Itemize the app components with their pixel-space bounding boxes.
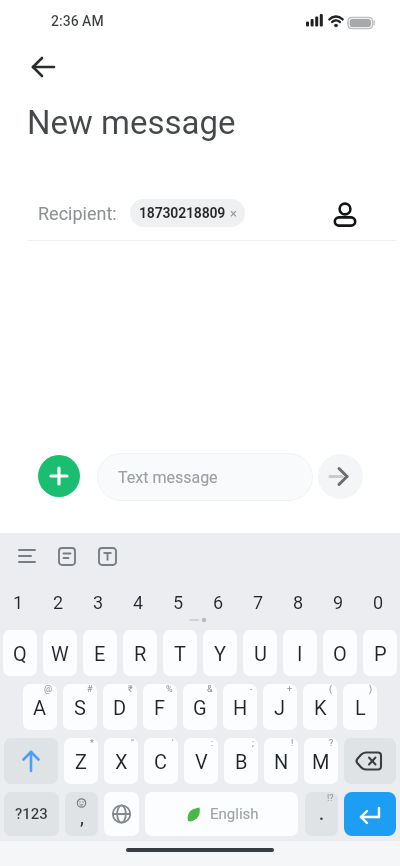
staticText: !? bbox=[327, 793, 334, 804]
staticText: & bbox=[207, 684, 213, 695]
staticText: 1 bbox=[13, 592, 24, 613]
staticText: A bbox=[33, 696, 47, 719]
staticText: * bbox=[90, 738, 94, 749]
button[interactable]: ?123 bbox=[4, 792, 59, 836]
button[interactable]: , bbox=[65, 792, 98, 836]
button[interactable]: J bbox=[263, 684, 297, 730]
button[interactable]: O bbox=[323, 630, 357, 676]
staticText: W bbox=[51, 642, 69, 665]
staticText: Q bbox=[13, 642, 27, 665]
staticText: # bbox=[87, 684, 93, 695]
staticText: F bbox=[154, 696, 166, 719]
staticText: R bbox=[134, 642, 147, 665]
button[interactable] bbox=[318, 454, 363, 499]
button[interactable]: U bbox=[243, 630, 277, 676]
staticText: H bbox=[233, 696, 248, 719]
button[interactable]: S bbox=[63, 684, 97, 730]
button[interactable]: 4 bbox=[118, 589, 158, 615]
staticText: ) bbox=[369, 684, 373, 695]
button[interactable]: X bbox=[104, 738, 138, 784]
staticText: × bbox=[230, 206, 237, 221]
staticText: % bbox=[166, 684, 173, 695]
staticText: ₹ bbox=[128, 684, 133, 695]
staticText: ! bbox=[291, 738, 294, 749]
staticText: : bbox=[211, 738, 214, 749]
button[interactable]: Q bbox=[3, 630, 37, 676]
button[interactable] bbox=[4, 738, 58, 784]
button[interactable]: T bbox=[163, 630, 197, 676]
staticText: S bbox=[74, 696, 86, 719]
button[interactable]: I bbox=[283, 630, 317, 676]
staticText: J bbox=[274, 696, 286, 719]
button[interactable]: D bbox=[103, 684, 137, 730]
staticText: 2 bbox=[53, 592, 64, 613]
button[interactable]: L bbox=[343, 684, 377, 730]
staticText: @ bbox=[44, 684, 53, 695]
button[interactable]: N bbox=[264, 738, 298, 784]
staticText: Z bbox=[75, 750, 87, 773]
staticText: N bbox=[274, 750, 289, 773]
button[interactable]: W bbox=[43, 630, 77, 676]
staticText: O bbox=[333, 642, 347, 665]
button[interactable]: C bbox=[144, 738, 178, 784]
staticText: B bbox=[235, 750, 248, 773]
button[interactable]: 8 bbox=[278, 589, 318, 615]
staticText: P bbox=[374, 642, 387, 665]
staticText: G bbox=[193, 696, 207, 719]
button[interactable]: B bbox=[224, 738, 258, 784]
staticText: 6 bbox=[213, 592, 224, 613]
staticText: 7 bbox=[253, 592, 264, 613]
staticText: ' bbox=[172, 738, 174, 749]
button[interactable]: 6 bbox=[198, 589, 238, 615]
button[interactable] bbox=[344, 792, 396, 836]
staticText: 5 bbox=[173, 592, 184, 613]
button[interactable]: Z bbox=[64, 738, 98, 784]
button[interactable]: Text message bbox=[97, 453, 313, 501]
button[interactable]: F bbox=[143, 684, 177, 730]
button[interactable]: 18730218809 bbox=[130, 199, 245, 227]
staticText: 0 bbox=[373, 592, 384, 613]
staticText: ?123 bbox=[15, 805, 48, 823]
staticText: Text message bbox=[118, 468, 218, 487]
button[interactable] bbox=[333, 195, 357, 227]
button[interactable]: P bbox=[363, 630, 397, 676]
button[interactable]: 0 bbox=[358, 589, 398, 615]
button[interactable]: V bbox=[184, 738, 218, 784]
button[interactable]: M bbox=[304, 738, 338, 784]
button[interactable] bbox=[38, 455, 80, 497]
staticText: - bbox=[250, 684, 253, 695]
staticText: 8 bbox=[293, 592, 304, 613]
button[interactable]: English bbox=[145, 792, 298, 836]
button[interactable]: !? bbox=[305, 792, 338, 836]
button[interactable]: E bbox=[83, 630, 117, 676]
staticText: X bbox=[115, 750, 128, 773]
staticText: C bbox=[154, 750, 168, 773]
button[interactable]: K bbox=[303, 684, 337, 730]
button[interactable] bbox=[104, 792, 139, 836]
button[interactable]: A bbox=[23, 684, 57, 730]
staticText: 9 bbox=[333, 592, 344, 613]
staticText: 4 bbox=[133, 592, 144, 613]
button[interactable] bbox=[26, 52, 60, 82]
staticText: " bbox=[131, 738, 134, 749]
button[interactable]: 1 bbox=[0, 589, 38, 615]
staticText: 18730218809 bbox=[139, 205, 226, 221]
staticText: 2:36 AM bbox=[51, 13, 104, 29]
button[interactable]: 5 bbox=[158, 589, 198, 615]
staticText: L bbox=[355, 696, 366, 719]
staticText: + bbox=[287, 684, 293, 695]
button[interactable]: R bbox=[123, 630, 157, 676]
button[interactable]: H bbox=[223, 684, 257, 730]
button[interactable]: 3 bbox=[78, 589, 118, 615]
button[interactable]: 9 bbox=[318, 589, 358, 615]
button[interactable]: 2 bbox=[38, 589, 78, 615]
button[interactable] bbox=[344, 738, 396, 784]
button[interactable]: Y bbox=[203, 630, 237, 676]
staticText: D bbox=[113, 696, 127, 719]
button[interactable]: G bbox=[183, 684, 217, 730]
staticText: 3 bbox=[93, 592, 104, 613]
staticText: ; bbox=[252, 738, 254, 749]
button[interactable]: 7 bbox=[238, 589, 278, 615]
staticText: M bbox=[312, 750, 330, 773]
staticText: U bbox=[254, 642, 267, 665]
